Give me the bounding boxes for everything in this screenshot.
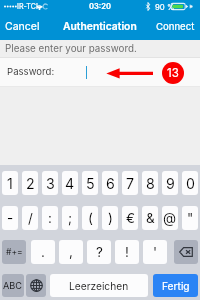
button[interactable]: / bbox=[22, 206, 38, 230]
button[interactable]: 2 bbox=[22, 171, 38, 195]
staticText: , bbox=[69, 244, 73, 260]
button[interactable]: 9 bbox=[162, 171, 178, 195]
staticText: 3 bbox=[46, 175, 55, 192]
staticText: Connect bbox=[156, 21, 195, 33]
staticText: ? bbox=[96, 244, 103, 260]
staticText: 90 % bbox=[155, 2, 175, 11]
button[interactable]: 1 bbox=[2, 171, 18, 195]
staticText: #+= bbox=[6, 247, 23, 257]
button[interactable]: 4 bbox=[62, 171, 78, 195]
button[interactable]: ( bbox=[82, 206, 98, 230]
staticText: 03:20 bbox=[89, 2, 112, 11]
staticText: 6 bbox=[106, 175, 115, 192]
staticText: ) bbox=[108, 210, 113, 226]
staticText: 13 bbox=[167, 66, 179, 80]
staticText: ! bbox=[125, 244, 129, 260]
button[interactable]: 6 bbox=[102, 171, 118, 195]
staticText: 1 bbox=[7, 175, 13, 192]
button[interactable]: Leerzeichen bbox=[50, 274, 148, 297]
button[interactable]: @ bbox=[162, 206, 178, 230]
staticText: Password: bbox=[7, 66, 55, 78]
button[interactable]: Backspace bbox=[174, 240, 198, 264]
button[interactable]: & bbox=[142, 206, 158, 230]
staticText: 9 bbox=[166, 175, 175, 192]
button[interactable]: ! bbox=[115, 240, 139, 264]
staticText: : bbox=[48, 210, 52, 226]
button[interactable]: ; bbox=[62, 206, 78, 230]
button[interactable]: Fertig bbox=[153, 274, 198, 297]
staticText: ' bbox=[153, 244, 158, 260]
staticText: Authentication bbox=[63, 20, 137, 33]
button[interactable]: 5 bbox=[82, 171, 98, 195]
staticText: @ bbox=[163, 210, 177, 226]
button[interactable]: , bbox=[59, 240, 83, 264]
button[interactable]: Cancel bbox=[2, 16, 43, 37]
staticText: ABC bbox=[3, 280, 23, 291]
button[interactable]: 3 bbox=[42, 171, 58, 195]
button[interactable]: ABC bbox=[2, 274, 24, 297]
staticText: " bbox=[187, 210, 194, 226]
button[interactable]: 8 bbox=[142, 171, 158, 195]
button[interactable]: 7 bbox=[122, 171, 138, 195]
staticText: & bbox=[146, 210, 155, 226]
button[interactable]: - bbox=[2, 206, 18, 230]
button[interactable]: Change keyboard language bbox=[26, 274, 46, 297]
staticText: 0 bbox=[186, 175, 195, 192]
staticText: 4 bbox=[65, 175, 75, 192]
button[interactable]: " bbox=[182, 206, 198, 230]
staticText: Leerzeichen bbox=[69, 280, 129, 292]
staticText: € bbox=[126, 210, 135, 226]
staticText: / bbox=[28, 210, 33, 226]
staticText: IR-TCI bbox=[17, 2, 38, 11]
staticText: 2 bbox=[26, 175, 35, 192]
staticText: Please enter your password. bbox=[5, 43, 137, 55]
staticText: - bbox=[7, 210, 14, 226]
button[interactable]: € bbox=[122, 206, 138, 230]
staticText: ( bbox=[88, 210, 93, 226]
staticText: 5 bbox=[86, 175, 95, 192]
button[interactable]: ) bbox=[102, 206, 118, 230]
staticText: . bbox=[41, 244, 45, 260]
staticText: ; bbox=[68, 210, 73, 226]
staticText: 7 bbox=[126, 175, 135, 192]
staticText: Fertig bbox=[162, 280, 190, 292]
button[interactable]: 0 bbox=[182, 171, 198, 195]
button[interactable]: ? bbox=[87, 240, 111, 264]
button[interactable]: Connect bbox=[153, 17, 198, 37]
button[interactable]: #+= bbox=[2, 240, 26, 264]
staticText: Cancel bbox=[5, 20, 40, 33]
button[interactable]: ' bbox=[143, 240, 167, 264]
button[interactable]: . bbox=[31, 240, 55, 264]
button[interactable]: : bbox=[42, 206, 58, 230]
staticText: 8 bbox=[146, 175, 155, 192]
